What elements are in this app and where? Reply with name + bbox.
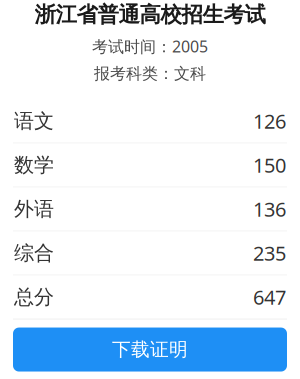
button[interactable]: 下载证明 — [13, 328, 287, 372]
button[interactable]: 总分 — [0, 276, 300, 319]
button[interactable]: 语文 — [0, 100, 300, 143]
staticText: 总分 — [14, 285, 54, 309]
staticText: 126 — [253, 108, 286, 134]
staticText: 考试时间：2005 — [92, 36, 208, 57]
button[interactable]: 综合 — [0, 232, 300, 275]
staticText: 647 — [253, 284, 286, 310]
staticText: 报考科类：文科 — [94, 64, 206, 84]
staticText: 语文 — [14, 109, 54, 133]
staticText: 150 — [253, 152, 286, 178]
staticText: 外语 — [14, 197, 54, 221]
staticText: 235 — [253, 240, 286, 266]
staticText: 浙江省普通高校招生考试 — [34, 1, 265, 28]
staticText: 下载证明 — [112, 338, 188, 361]
staticText: 136 — [253, 196, 286, 222]
button[interactable]: 外语 — [0, 188, 300, 231]
staticText: 数学 — [14, 153, 54, 177]
button[interactable]: 数学 — [0, 144, 300, 187]
staticText: 综合 — [14, 241, 54, 265]
